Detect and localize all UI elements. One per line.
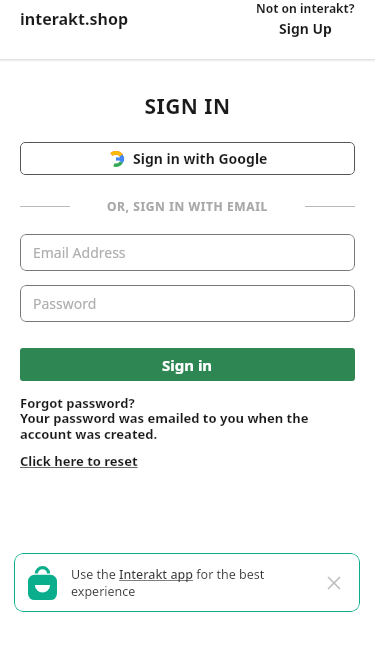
staticText: OR, SIGN IN WITH EMAIL — [107, 198, 268, 214]
button[interactable]: Sign in with Google — [20, 142, 355, 175]
button[interactable]: Close — [322, 571, 346, 595]
button[interactable]: interakt.shop — [20, 8, 129, 30]
staticText: Email Address — [33, 243, 126, 262]
staticText: Password — [33, 294, 97, 313]
staticText: Use the Interakt app for the best experi… — [71, 566, 314, 600]
button[interactable]: Password — [20, 285, 355, 322]
staticText: Sign in with Google — [133, 149, 268, 168]
staticText: Not on interakt? — [256, 0, 355, 16]
button[interactable]: Use the Interakt app for the best experi… — [14, 553, 360, 612]
staticText: Forgot password? Your password was email… — [20, 394, 309, 443]
staticText: SIGN IN — [0, 92, 375, 121]
staticText: Sign Up — [279, 19, 332, 38]
button[interactable]: Click here to reset — [20, 452, 138, 470]
button[interactable]: Not on interakt? — [256, 0, 355, 38]
staticText: Sign in — [162, 355, 213, 375]
button[interactable]: Sign in — [20, 348, 355, 381]
button[interactable]: Email Address — [20, 234, 355, 271]
